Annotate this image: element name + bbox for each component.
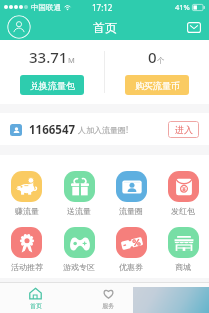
button[interactable]: 活动推荐: [0, 227, 53, 272]
button[interactable]: 赚流量: [0, 171, 53, 216]
staticText: 发红包: [171, 206, 195, 216]
staticText: 人加入流量圈!: [78, 124, 129, 135]
button[interactable]: 进入: [168, 121, 199, 138]
staticText: 购买流量币: [135, 80, 180, 91]
button[interactable]: 优惠券: [105, 227, 157, 272]
staticText: 流量圈: [119, 206, 143, 216]
button[interactable]: 服务: [71, 283, 145, 313]
button[interactable]: 游戏专区: [53, 227, 105, 272]
staticText: 发现: [171, 302, 183, 310]
button[interactable]: 购买流量币: [125, 75, 189, 95]
button[interactable]: 兑换流量包: [20, 75, 84, 95]
staticText: 0: [148, 47, 157, 67]
button[interactable]: 流量圈: [105, 171, 157, 216]
button[interactable]: Profile: [7, 15, 31, 39]
staticText: 兑换流量包: [30, 80, 75, 91]
staticText: 优惠券: [119, 262, 143, 272]
staticText: 41%: [175, 2, 190, 12]
staticText: 送流量: [67, 206, 91, 216]
staticText: 首页: [30, 302, 42, 310]
staticText: 中国联通: [31, 3, 61, 12]
button[interactable]: Messages: [186, 19, 202, 35]
button[interactable]: 发红包: [157, 171, 209, 216]
staticText: 个: [157, 56, 165, 65]
staticText: 赚流量: [15, 206, 39, 216]
staticText: 1166547: [29, 122, 76, 138]
staticText: 游戏专区: [63, 262, 95, 272]
button[interactable]: 商城: [157, 227, 209, 272]
staticText: 进入: [175, 124, 193, 135]
staticText: 活动推荐: [11, 262, 43, 272]
button[interactable]: 送流量: [53, 171, 105, 216]
staticText: 服务: [102, 302, 114, 310]
button[interactable]: 1166547: [0, 113, 209, 145]
staticText: M: [68, 55, 75, 65]
staticText: 33.71: [29, 47, 68, 67]
staticText: 首页: [93, 20, 117, 35]
button[interactable]: 发现: [145, 283, 209, 313]
staticText: 17:12: [92, 2, 113, 13]
staticText: 商城: [175, 262, 191, 272]
button[interactable]: 首页: [0, 283, 71, 313]
